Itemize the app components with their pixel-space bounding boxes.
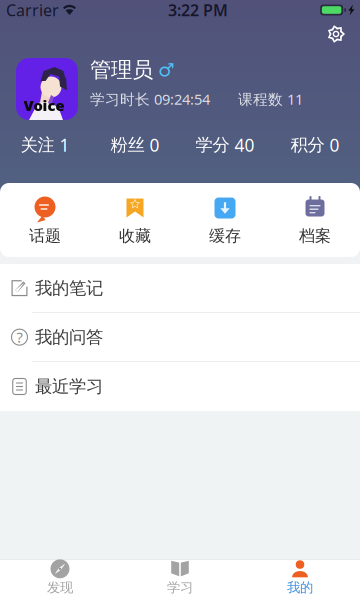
staticText: 我的笔记 — [35, 277, 103, 299]
staticText: ♂ — [158, 59, 175, 81]
staticText: 3:22 PM — [168, 0, 228, 21]
button[interactable]: 档案 — [270, 183, 360, 257]
staticText: 学习 — [167, 579, 193, 596]
staticText: 关注 — [20, 134, 54, 156]
button[interactable]: 我的 — [240, 560, 360, 600]
staticText: 话题 — [29, 226, 61, 246]
staticText: 收藏 — [119, 226, 151, 246]
staticText: 档案 — [299, 226, 331, 246]
staticText: Carrier — [6, 0, 59, 21]
button[interactable]: 学分 — [180, 133, 270, 157]
staticText: 40 — [234, 133, 254, 156]
staticText: 学分 — [195, 134, 229, 156]
button[interactable]: 学习 — [120, 560, 240, 600]
staticText: 缓存 — [209, 226, 241, 246]
button[interactable]: 缓存 — [180, 183, 270, 257]
staticText: 0 — [329, 133, 339, 156]
staticText: 管理员 — [90, 57, 153, 83]
button[interactable]: 发现 — [0, 560, 120, 600]
button[interactable]: 积分 — [270, 133, 360, 157]
button[interactable]: 话题 — [0, 183, 90, 257]
button[interactable]: 我的笔记 — [0, 264, 360, 313]
staticText: 积分 — [290, 134, 324, 156]
staticText: 学习时长 09:24:54 — [90, 89, 210, 109]
staticText: 课程数 11 — [238, 89, 303, 109]
button[interactable]: ? — [0, 313, 360, 362]
button[interactable]: 收藏 — [90, 183, 180, 257]
button[interactable]: 关注 — [0, 133, 90, 157]
staticText: ? — [16, 327, 22, 347]
staticText: 0 — [149, 133, 159, 156]
staticText: 粉丝 — [110, 134, 144, 156]
staticText: 最近学习 — [35, 376, 103, 397]
staticText: 发现 — [47, 579, 73, 596]
button[interactable]: 粉丝 — [90, 133, 180, 157]
button[interactable]: 最近学习 — [0, 362, 360, 411]
staticText: 我的 — [287, 579, 313, 596]
staticText: Voice — [23, 95, 64, 115]
staticText: 我的问答 — [35, 326, 103, 348]
button[interactable]: Settings — [321, 20, 351, 48]
staticText: 1 — [59, 133, 69, 156]
